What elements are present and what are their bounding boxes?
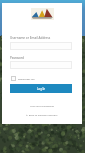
button[interactable]: Remember Me: [11, 76, 35, 81]
button[interactable]: [10, 42, 72, 50]
staticText: Remember Me: [18, 77, 35, 80]
button[interactable]: Log In: [10, 84, 72, 93]
button[interactable]: ← Back to Biology Partners: [26, 113, 58, 116]
staticText: Username or Email Address: [10, 36, 51, 40]
button[interactable]: Lost your password?: [30, 104, 55, 107]
staticText: Password: [10, 56, 24, 60]
button[interactable]: [10, 61, 72, 69]
staticText: Log In: [37, 87, 46, 91]
